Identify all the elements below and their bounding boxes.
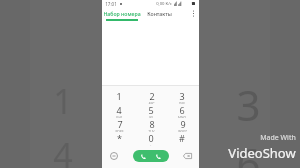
button[interactable]: Video call [108,150,120,162]
staticText: 1 [116,90,122,102]
button[interactable]: 1 [105,90,133,104]
staticText: 9 [180,118,186,130]
staticText: DEF [179,102,185,104]
button[interactable]: 5 [137,104,165,118]
staticText: 0 [148,132,154,144]
staticText: 1 [53,78,73,124]
button[interactable]: 8 [137,118,165,132]
staticText: # [179,132,185,144]
staticText: 3 [236,76,261,126]
staticText: ABC [148,102,155,104]
staticText: 6 [179,104,185,116]
staticText: TUV [148,130,155,132]
staticText: 8 [149,118,155,130]
staticText: 7 [117,118,123,130]
staticText: Набор номера [103,10,141,17]
staticText: 4 [53,132,73,168]
staticText: PQRS [115,130,124,132]
button[interactable]: 9 [168,118,196,132]
staticText: GHI [116,116,122,118]
staticText: Made With [260,133,296,143]
staticText: 0,00 К/с [156,1,172,7]
button[interactable]: 4 [105,104,133,118]
button[interactable]: 7 [105,118,133,132]
staticText: 5 [148,104,154,116]
staticText: 6 [236,134,261,168]
staticText: * [117,132,122,144]
button[interactable]: # [168,132,196,146]
button[interactable]: * [105,132,133,146]
staticText: + [150,144,152,146]
button[interactable]: Контакты [142,7,176,19]
button[interactable]: 6 [168,104,196,118]
staticText: VideoShow [228,144,296,162]
button[interactable]: Набор номера [102,7,142,19]
staticText: 2 [149,90,155,102]
staticText: MNO [178,116,186,118]
button[interactable]: 3 [168,90,196,104]
staticText: 4 [116,104,122,116]
button[interactable]: 0 [137,132,165,146]
button[interactable]: More options [187,7,199,19]
button[interactable]: 2 [137,90,165,104]
button[interactable]: Call [133,150,169,162]
staticText: Контакты [147,10,172,17]
staticText: JKL [149,116,154,118]
staticText: 17:01 [105,1,117,7]
button[interactable]: Backspace [181,150,193,162]
staticText: WXYZ [178,130,187,132]
staticText: 3 [179,90,185,102]
